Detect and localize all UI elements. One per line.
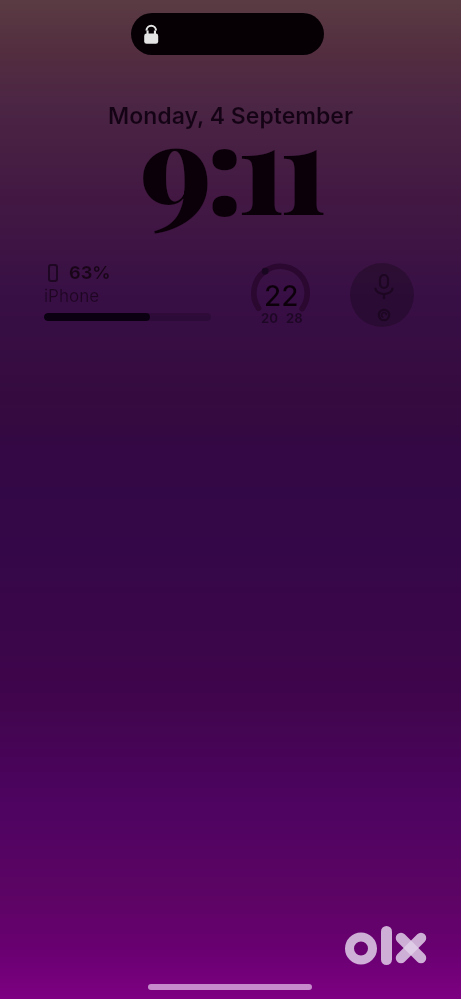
staticText: 20 bbox=[261, 310, 278, 326]
staticText: iPhone bbox=[44, 286, 100, 307]
staticText: 22 bbox=[264, 279, 299, 313]
staticText: Monday, 4 September bbox=[108, 102, 354, 130]
staticText: 28 bbox=[286, 310, 303, 326]
staticText: 63% bbox=[69, 262, 111, 284]
button[interactable]: Temperature 22 degrees, range 20 to 28 bbox=[248, 258, 314, 326]
button[interactable]: Battery 63 percent, iPhone bbox=[40, 258, 220, 326]
button[interactable]: iPhone is locked bbox=[131, 13, 324, 55]
staticText: 9:11 bbox=[140, 82, 322, 246]
button[interactable]: Shazam music recognition bbox=[350, 263, 414, 327]
